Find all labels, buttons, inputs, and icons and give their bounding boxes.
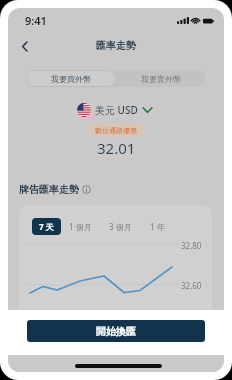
button[interactable]: 我要賣外幣: [116, 70, 206, 87]
staticText: 我要賣外幣: [141, 74, 181, 84]
staticText: 匯率走勢: [96, 39, 136, 52]
staticText: 9:41: [25, 13, 47, 28]
staticText: 數位通路優惠: [95, 126, 137, 135]
button[interactable]: 3 個月: [100, 218, 140, 235]
staticText: 牌告匯率走勢: [19, 183, 79, 196]
button[interactable]: 7 天: [32, 218, 61, 235]
staticText: 美元 USD: [95, 103, 138, 117]
staticText: 32.60: [181, 280, 202, 290]
staticText: 32.01: [97, 138, 136, 156]
staticText: 我要買外幣: [51, 74, 91, 84]
staticText: 開始換匯: [96, 325, 136, 338]
staticText: 1 年: [150, 221, 165, 232]
button[interactable]: 1 個月: [61, 218, 100, 235]
staticText: 1 個月: [69, 221, 92, 232]
button[interactable]: 開始換匯: [27, 320, 205, 342]
staticText: 32.80: [181, 240, 202, 250]
button[interactable]: 1 年: [140, 218, 174, 235]
button[interactable]: Back: [12, 32, 38, 60]
button[interactable]: 美元 USD: [77, 103, 152, 117]
staticText: 7 天: [39, 221, 54, 232]
button[interactable]: 我要買外幣: [26, 70, 116, 87]
staticText: 3 個月: [109, 221, 132, 232]
